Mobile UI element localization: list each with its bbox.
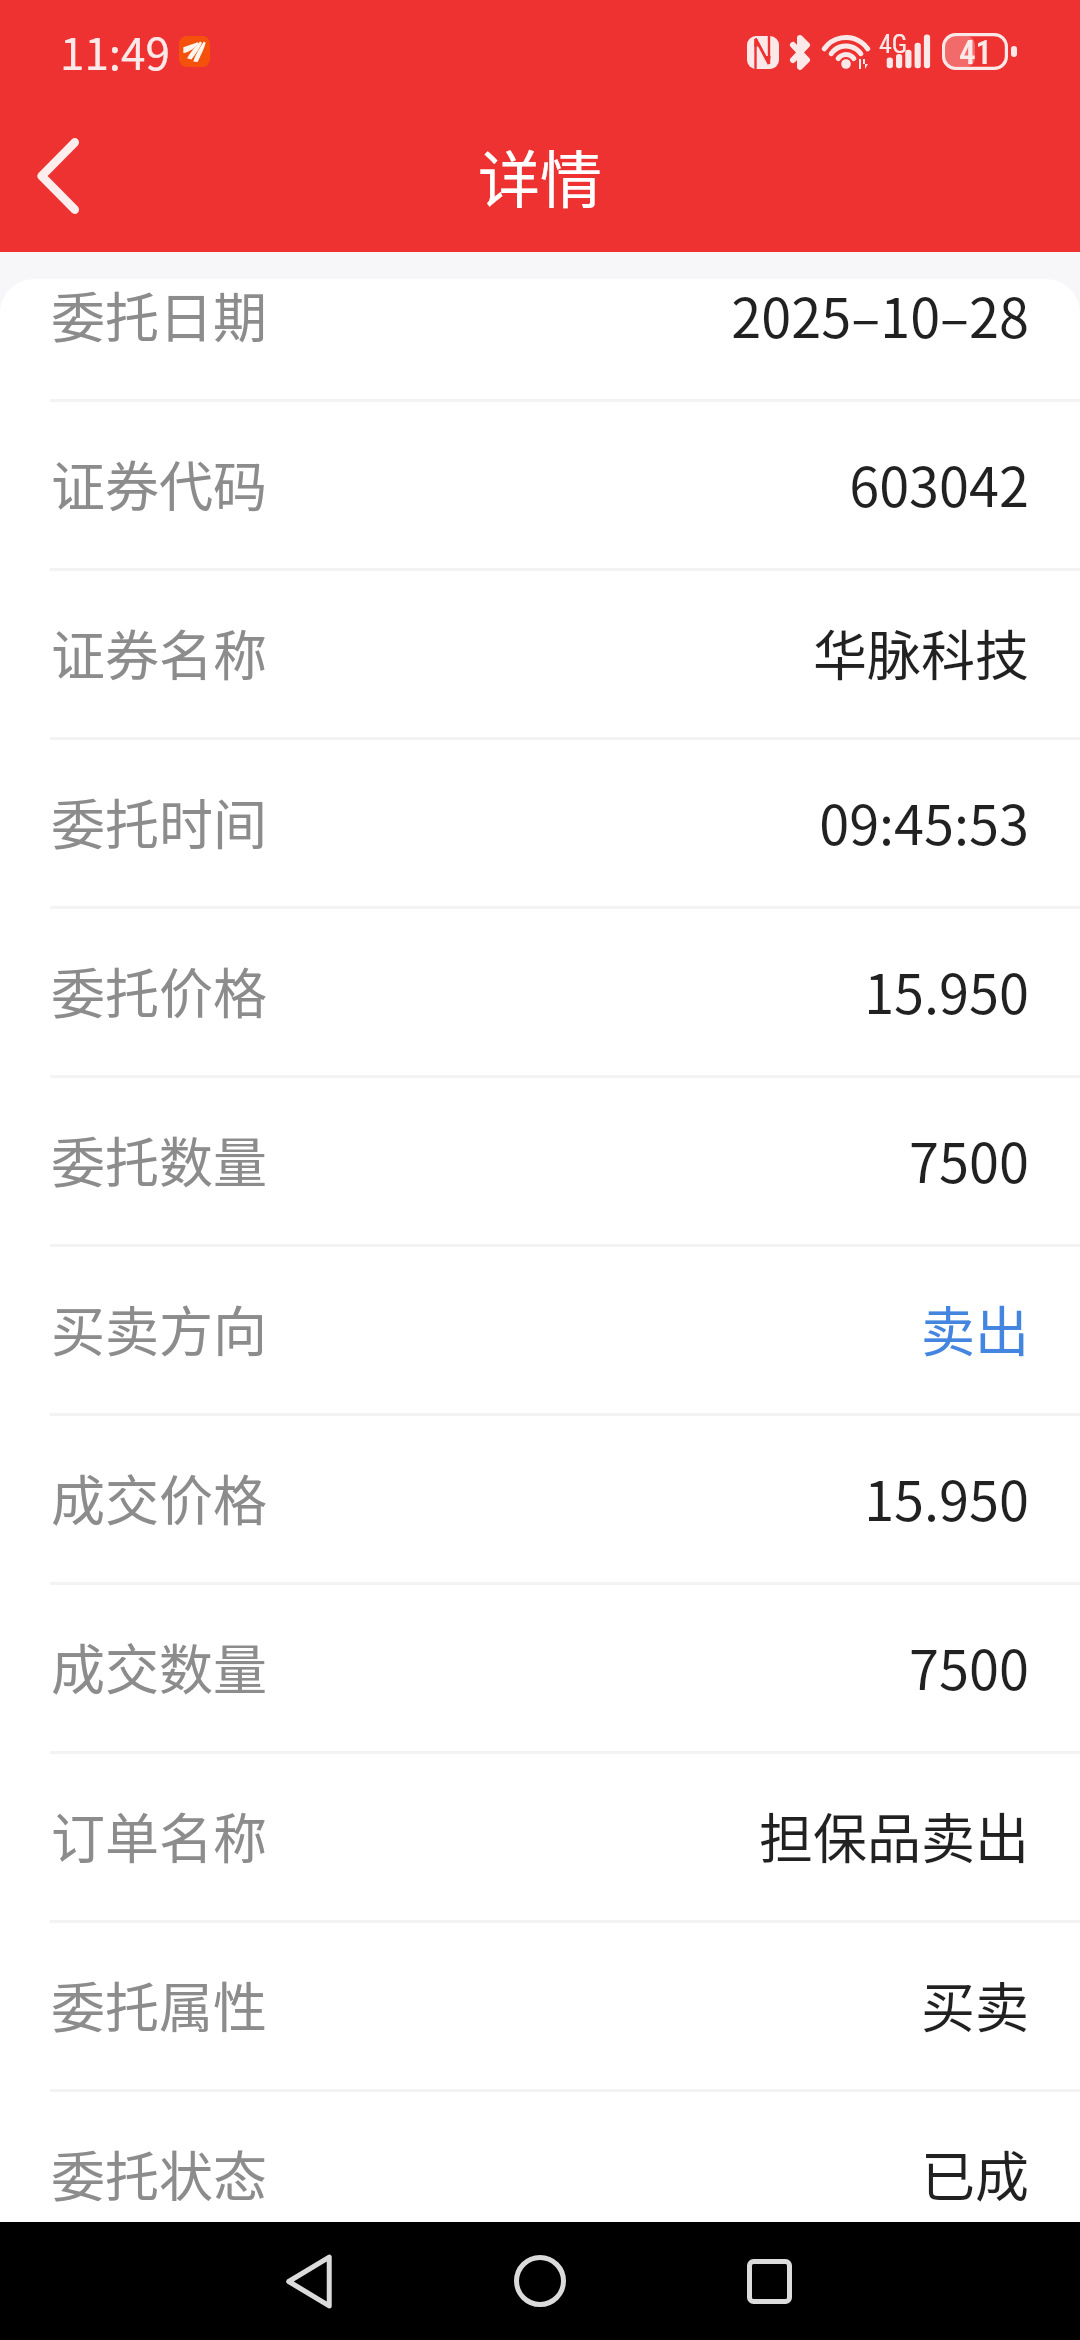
- staticText: 11:49: [60, 19, 170, 83]
- staticText: 7500: [909, 1627, 1029, 1705]
- staticText: 成交价格: [51, 1458, 267, 1536]
- button[interactable]: 委托时间: [0, 738, 1080, 904]
- button[interactable]: Back: [249, 2222, 369, 2340]
- button[interactable]: 委托属性: [0, 1921, 1080, 2087]
- button[interactable]: Home: [480, 2222, 600, 2340]
- button[interactable]: 委托日期: [0, 279, 1080, 397]
- button[interactable]: 委托价格: [0, 907, 1080, 1073]
- button[interactable]: 成交价格: [0, 1414, 1080, 1580]
- staticText: 委托属性: [51, 1965, 267, 2043]
- button[interactable]: 订单名称: [0, 1752, 1080, 1918]
- staticText: 603042: [849, 444, 1029, 522]
- staticText: 7500: [909, 1120, 1029, 1198]
- button[interactable]: 买卖方向: [0, 1245, 1080, 1411]
- button[interactable]: 返回: [0, 100, 120, 252]
- button[interactable]: 成交数量: [0, 1583, 1080, 1749]
- button[interactable]: 证券代码: [0, 400, 1080, 566]
- button[interactable]: 委托状态: [0, 2090, 1080, 2222]
- staticText: 证券代码: [51, 444, 267, 522]
- staticText: 买卖: [921, 1965, 1029, 2043]
- staticText: 订单名称: [51, 1796, 267, 1874]
- staticText: 详情: [478, 131, 603, 221]
- staticText: 卖出: [921, 1289, 1029, 1367]
- staticText: 买卖方向: [51, 1289, 267, 1367]
- button[interactable]: 证券名称: [0, 569, 1080, 735]
- staticText: 委托状态: [51, 2134, 267, 2212]
- staticText: 担保品卖出: [759, 1796, 1029, 1874]
- staticText: 委托数量: [51, 1120, 267, 1198]
- staticText: 15.950: [864, 1458, 1029, 1536]
- button[interactable]: 委托数量: [0, 1076, 1080, 1242]
- staticText: 成交数量: [51, 1627, 267, 1705]
- staticText: 15.950: [864, 951, 1029, 1029]
- staticText: 委托价格: [51, 951, 267, 1029]
- staticText: 41: [959, 33, 992, 70]
- button[interactable]: Recents: [709, 2222, 829, 2340]
- staticText: 已成: [921, 2134, 1029, 2212]
- staticText: 华脉科技: [813, 613, 1029, 691]
- staticText: 09:45:53: [819, 782, 1029, 860]
- staticText: 委托日期: [51, 279, 267, 353]
- staticText: 证券名称: [51, 613, 267, 691]
- staticText: 2025–10–28: [731, 279, 1029, 353]
- staticText: 委托时间: [51, 782, 267, 860]
- staticText: 4G: [879, 29, 908, 59]
